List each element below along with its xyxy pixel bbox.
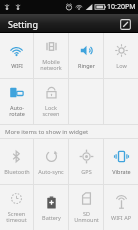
staticText: Lock screen <box>42 104 60 118</box>
button[interactable]: Bluetooth <box>0 139 33 184</box>
button[interactable]: GPS <box>69 139 103 184</box>
button[interactable]: Vibrate <box>104 139 138 184</box>
staticText: Setting <box>8 18 38 30</box>
button[interactable]: Edit <box>118 17 132 31</box>
staticText: GPS <box>81 168 92 175</box>
button[interactable]: Battery <box>34 185 68 230</box>
staticText: Screen timeout <box>6 210 27 224</box>
button[interactable]: Mobile network <box>34 33 68 78</box>
button[interactable]: WIFI <box>0 33 33 78</box>
button[interactable]: Screen timeout <box>0 185 33 230</box>
button[interactable]: Ringer <box>69 33 103 78</box>
staticText: Auto-sync <box>38 168 64 175</box>
button[interactable]: Lock screen <box>34 79 68 124</box>
staticText: Auto- rotate <box>9 104 25 118</box>
staticText: 10:20PM <box>107 2 136 12</box>
button[interactable]: Auto-sync <box>34 139 68 184</box>
staticText: SD Unmount <box>74 210 99 224</box>
button[interactable]: SD Unmount <box>69 185 103 230</box>
button[interactable]: Auto- rotate <box>0 79 33 124</box>
staticText: Battery <box>42 214 61 221</box>
button[interactable]: WIFI AP <box>104 185 138 230</box>
staticText: Ringer <box>78 62 95 69</box>
staticText: More items to show in widget <box>5 128 89 136</box>
button[interactable]: Low <box>104 33 138 78</box>
staticText: Mobile network <box>40 58 62 72</box>
staticText: WIFI AP <box>111 214 131 221</box>
staticText: WIFI <box>11 62 23 69</box>
staticText: Vibrate <box>112 168 131 175</box>
staticText: Low <box>116 62 127 69</box>
staticText: Bluetooth <box>4 168 30 175</box>
